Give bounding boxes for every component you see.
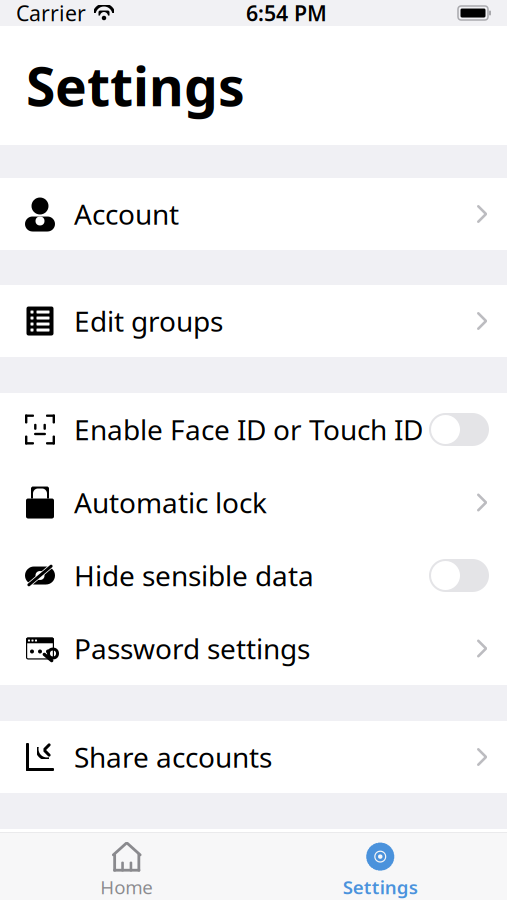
staticText: Account <box>74 195 179 233</box>
staticText: Edit groups <box>74 302 223 340</box>
staticText: Enable Face ID or Touch ID <box>74 411 423 448</box>
button[interactable]: Hide sensible data <box>0 539 507 612</box>
staticText: 6:54 PM <box>246 0 327 27</box>
staticText: Password settings <box>74 630 310 667</box>
button[interactable]: Enable Face ID or Touch ID <box>0 393 507 466</box>
button[interactable]: Share accounts <box>0 721 507 793</box>
button[interactable]: Edit groups <box>0 285 507 357</box>
button[interactable]: Settings <box>253 841 507 900</box>
staticText: Hide sensible data <box>74 557 314 594</box>
staticText: Carrier <box>16 0 86 27</box>
staticText: Automatic lock <box>74 484 267 521</box>
staticText: Home <box>100 875 153 899</box>
button[interactable]: Password settings <box>0 612 507 685</box>
button[interactable]: Account <box>0 178 507 250</box>
staticText: Share accounts <box>74 738 272 776</box>
staticText: Settings <box>343 875 418 899</box>
staticText: Settings <box>26 50 245 121</box>
button[interactable]: Automatic lock <box>0 466 507 539</box>
button[interactable]: Home <box>0 841 253 900</box>
